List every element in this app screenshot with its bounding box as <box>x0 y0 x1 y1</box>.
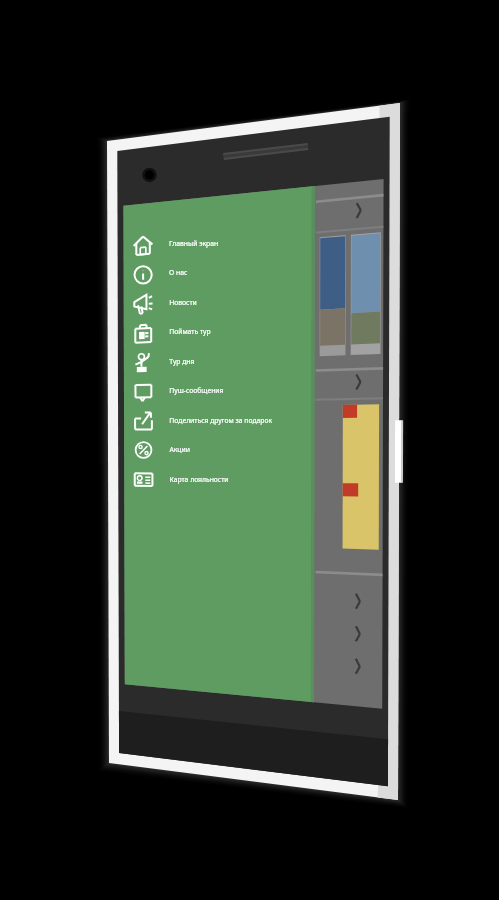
button[interactable]: Navigation drawer <box>0 0 499 900</box>
